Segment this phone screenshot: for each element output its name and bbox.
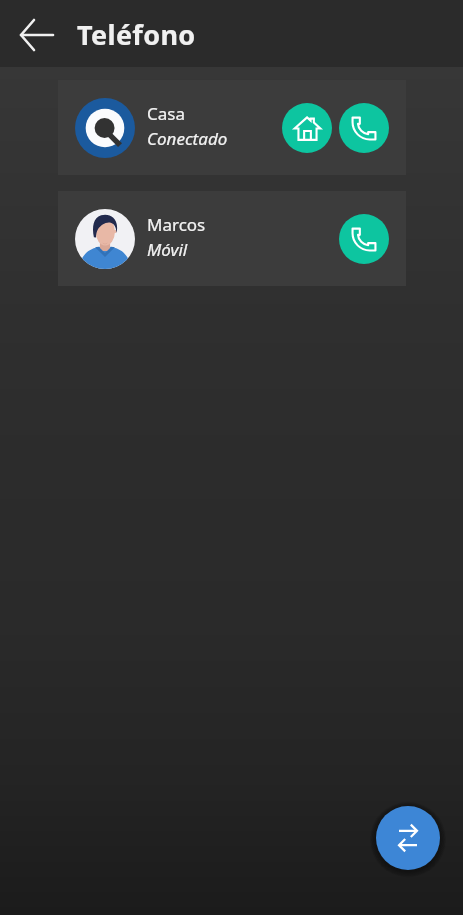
- staticText: Móvil: [147, 238, 188, 261]
- staticText: Marcos: [147, 213, 206, 236]
- staticText: Casa: [147, 102, 185, 125]
- button[interactable]: Llamar: [339, 103, 389, 153]
- staticText: Conectado: [147, 127, 228, 150]
- staticText: Teléfono: [77, 16, 196, 53]
- button[interactable]: Atrás: [13, 11, 59, 57]
- button[interactable]: Casa: [58, 80, 406, 175]
- button[interactable]: Casa: [282, 103, 332, 153]
- button[interactable]: Marcos: [58, 191, 406, 286]
- button[interactable]: Transferir llamada: [376, 806, 440, 870]
- button[interactable]: Llamar: [339, 214, 389, 264]
